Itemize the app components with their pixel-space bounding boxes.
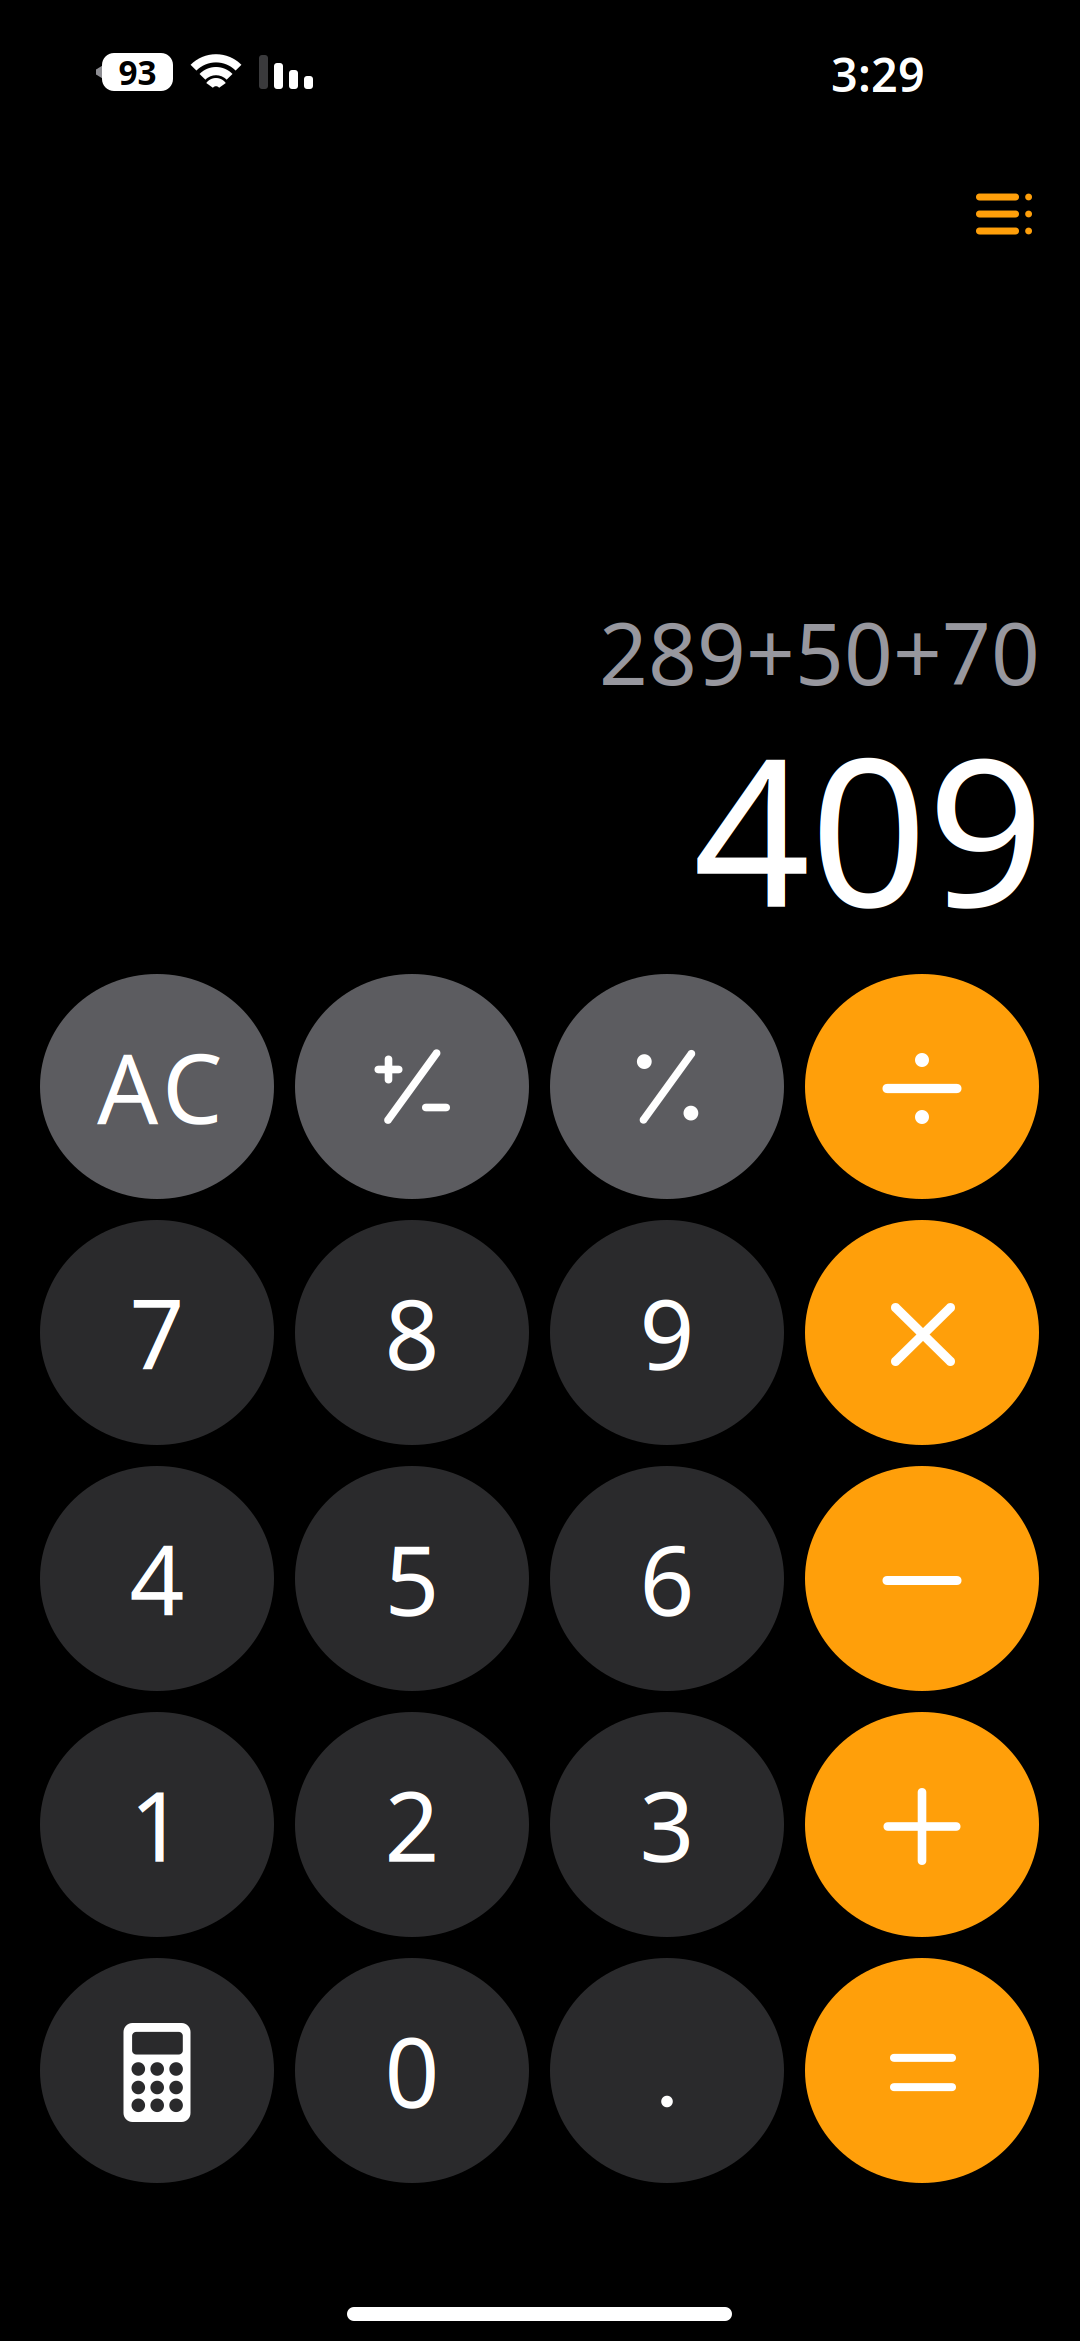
button[interactable]	[805, 1958, 1039, 2183]
button[interactable]: 7	[40, 1220, 274, 1445]
staticText: 5	[384, 1515, 439, 1642]
button[interactable]: History	[950, 170, 1058, 258]
staticText: AC	[97, 1023, 223, 1150]
staticText: 3:29	[831, 43, 925, 105]
button[interactable]: 6	[550, 1466, 784, 1691]
button[interactable]: AC	[40, 974, 274, 1199]
button[interactable]	[805, 1712, 1039, 1937]
staticText: 2	[384, 1761, 439, 1888]
button[interactable]	[805, 1466, 1039, 1691]
button[interactable]: 0	[295, 1958, 529, 2183]
staticText: 8	[384, 1269, 439, 1396]
button[interactable]	[805, 1220, 1039, 1445]
staticText: 6	[639, 1515, 694, 1642]
staticText: 409	[693, 691, 1044, 963]
button[interactable]: 2	[295, 1712, 529, 1937]
button[interactable]	[295, 974, 529, 1199]
staticText: 3	[639, 1761, 694, 1888]
staticText: 0	[384, 2007, 439, 2134]
staticText: 4	[129, 1515, 184, 1642]
button[interactable]: 9	[550, 1220, 784, 1445]
staticText: 9	[639, 1269, 694, 1396]
button[interactable]	[550, 1958, 784, 2183]
button[interactable]: 8	[295, 1220, 529, 1445]
staticText: 7	[129, 1269, 184, 1396]
staticText: 289+50+70	[599, 595, 1040, 709]
button[interactable]	[550, 974, 784, 1199]
staticText: 93	[118, 50, 156, 94]
button[interactable]: 1	[40, 1712, 274, 1937]
button[interactable]	[805, 974, 1039, 1199]
staticText: 1	[129, 1761, 184, 1888]
button[interactable]: 4	[40, 1466, 274, 1691]
button[interactable]: 5	[295, 1466, 529, 1691]
button[interactable]	[40, 1958, 274, 2183]
button[interactable]: 3	[550, 1712, 784, 1937]
